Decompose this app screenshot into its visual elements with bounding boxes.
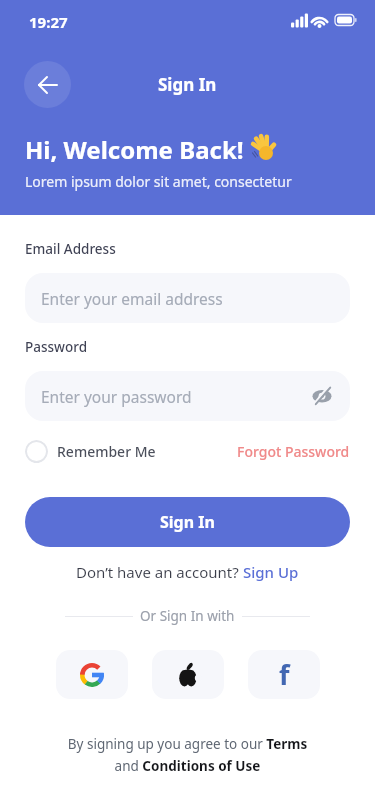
button[interactable]: Sign Up: [243, 562, 299, 582]
button[interactable]: Enter your password: [25, 371, 350, 421]
button[interactable]: f: [248, 650, 320, 699]
staticText: Lorem ipsum dolor sit amet, consectetur: [25, 172, 292, 191]
staticText: Sign In: [160, 511, 215, 533]
button[interactable]: [56, 650, 128, 699]
staticText: Or Sign In with: [133, 607, 242, 625]
button[interactable]: Enter your email address: [25, 273, 350, 323]
staticText: Email Address: [25, 240, 116, 258]
staticText: Sign In: [158, 73, 217, 96]
staticText: 19:27: [29, 12, 68, 32]
button[interactable]: Forgot Password: [237, 442, 350, 461]
button[interactable]: and Conditions of Use: [0, 757, 375, 775]
staticText: Enter your email address: [41, 288, 223, 309]
button[interactable]: By signing up you agree to our Terms: [0, 735, 375, 753]
staticText: f: [279, 656, 290, 693]
staticText: Don’t have an account?: [76, 562, 243, 582]
button[interactable]: [24, 61, 71, 108]
staticText: Enter your password: [41, 386, 192, 407]
button[interactable]: [25, 440, 48, 463]
button[interactable]: [311, 385, 333, 407]
staticText: Hi, Welcome Back!: [25, 133, 244, 166]
button[interactable]: Sign In: [25, 497, 350, 547]
staticText: Remember Me: [57, 442, 156, 461]
staticText: Password: [25, 338, 88, 356]
button[interactable]: [152, 650, 224, 699]
